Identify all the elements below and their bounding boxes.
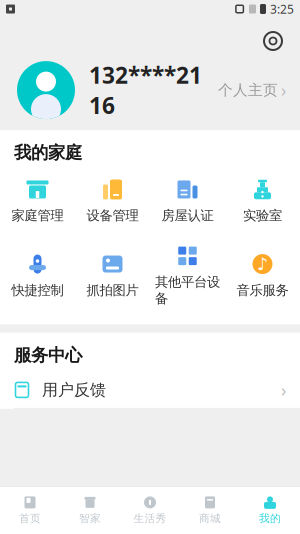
- button[interactable]: Settings: [256, 24, 290, 58]
- button[interactable]: 我的: [240, 491, 300, 530]
- button[interactable]: 生活秀: [120, 491, 180, 530]
- staticText: 实验室: [243, 207, 282, 224]
- button[interactable]: 智家: [60, 491, 120, 530]
- staticText: ›: [281, 79, 286, 102]
- staticText: 商城: [199, 512, 221, 525]
- button[interactable]: 家庭管理: [0, 173, 75, 228]
- staticText: 快捷控制: [11, 282, 63, 298]
- staticText: 3:25: [270, 1, 294, 17]
- button[interactable]: 个人主页: [212, 73, 292, 108]
- button[interactable]: 商城: [180, 491, 240, 530]
- staticText: 我的: [259, 512, 281, 525]
- staticText: 个人主页: [218, 81, 278, 99]
- staticText: 生活秀: [133, 512, 166, 525]
- staticText: 服务中心: [14, 345, 82, 366]
- button[interactable]: 设备管理: [75, 173, 150, 228]
- staticText: 房屋认证: [161, 207, 213, 224]
- staticText: 智家: [79, 512, 101, 525]
- button[interactable]: 快捷控制: [0, 248, 75, 302]
- staticText: ♪: [257, 254, 268, 274]
- button[interactable]: 实验室: [225, 173, 300, 228]
- button[interactable]: 抓拍图片: [75, 248, 150, 302]
- staticText: ›: [281, 378, 286, 401]
- staticText: 其他平台设备: [155, 274, 220, 307]
- staticText: 抓拍图片: [86, 282, 138, 298]
- staticText: 设备管理: [86, 207, 138, 224]
- staticText: 我的家庭: [14, 142, 82, 163]
- staticText: 音乐服务: [236, 282, 288, 298]
- button[interactable]: 首页: [0, 491, 60, 530]
- button[interactable]: 用户反馈: [0, 372, 300, 408]
- button[interactable]: 房屋认证: [150, 173, 225, 228]
- staticText: 首页: [19, 512, 41, 525]
- button[interactable]: ♪: [225, 248, 300, 302]
- button[interactable]: 其他平台设备: [150, 240, 225, 311]
- staticText: 家庭管理: [11, 207, 63, 224]
- staticText: 用户反馈: [42, 380, 106, 400]
- staticText: 132****2116: [89, 60, 202, 120]
